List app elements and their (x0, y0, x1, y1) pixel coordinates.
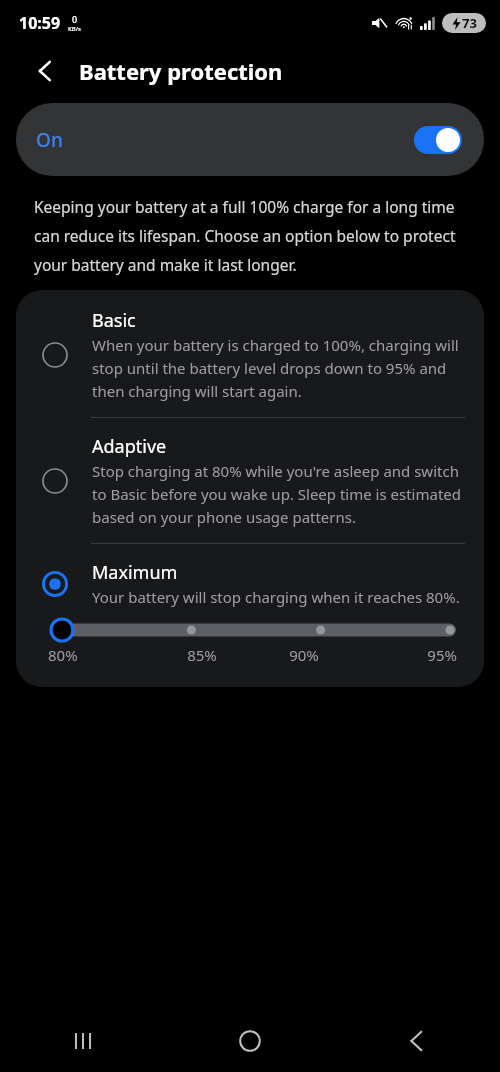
button[interactable]: Basic (16, 290, 484, 417)
staticText: KB/s (68, 25, 81, 33)
staticText: Adaptive (92, 434, 167, 459)
button[interactable]: Adaptive (16, 418, 484, 543)
staticText: Your battery will stop charging when it … (92, 587, 460, 607)
button[interactable]: Maximum (16, 544, 484, 617)
staticText: Maximum (92, 560, 178, 585)
staticText: When your battery is charged to 100%, ch… (92, 335, 466, 401)
staticText: 10:59 (19, 12, 61, 34)
staticText: Stop charging at 80% while you're asleep… (92, 461, 466, 527)
staticText: 85% (151, 645, 253, 665)
staticText: 90% (253, 645, 355, 665)
staticText: 80% (48, 645, 151, 665)
staticText: 73 (462, 14, 477, 32)
button[interactable]: On (16, 103, 484, 176)
staticText: Basic (92, 308, 136, 333)
button[interactable]: Back (26, 52, 64, 90)
staticText: On (36, 127, 63, 153)
staticText: 0 (72, 13, 78, 25)
button[interactable]: Home (166, 1010, 333, 1072)
button[interactable]: Back (333, 1010, 500, 1072)
staticText: 95% (355, 645, 457, 665)
staticText: Battery protection (79, 56, 283, 86)
staticText: Keeping your battery at a full 100% char… (34, 196, 460, 275)
button[interactable]: Recent apps (0, 1010, 166, 1072)
button[interactable]: Battery protection toggle (414, 126, 462, 154)
button[interactable]: 80% (48, 617, 457, 665)
